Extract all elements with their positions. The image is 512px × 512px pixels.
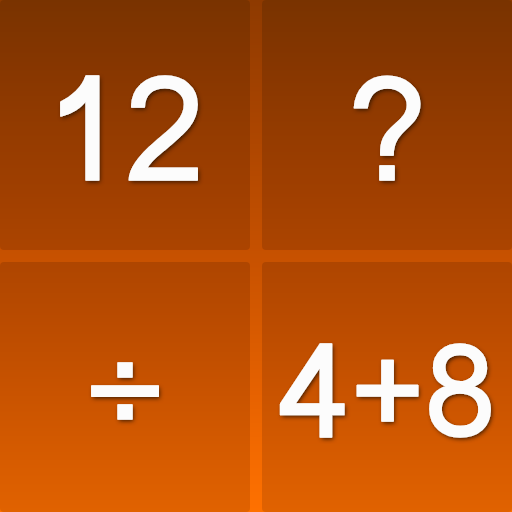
staticText: 4+8 (279, 289, 496, 492)
staticText: ÷ (86, 278, 164, 504)
staticText: 12 (45, 14, 205, 242)
staticText: ? (348, 17, 427, 241)
staticText: 4+8 (279, 289, 496, 492)
staticText: ? (348, 17, 427, 241)
staticText: ? (348, 17, 427, 241)
staticText: 4+8 (279, 289, 496, 492)
button[interactable]: 12 (0, 0, 250, 250)
staticText: 12 (45, 14, 205, 242)
button[interactable]: 4 plus 8 (262, 262, 512, 512)
button[interactable]: Divide (0, 262, 250, 512)
staticText: 12 (45, 14, 205, 242)
staticText: ÷ (86, 278, 164, 504)
button[interactable]: Unknown value (262, 0, 512, 250)
staticText: ÷ (86, 278, 164, 504)
